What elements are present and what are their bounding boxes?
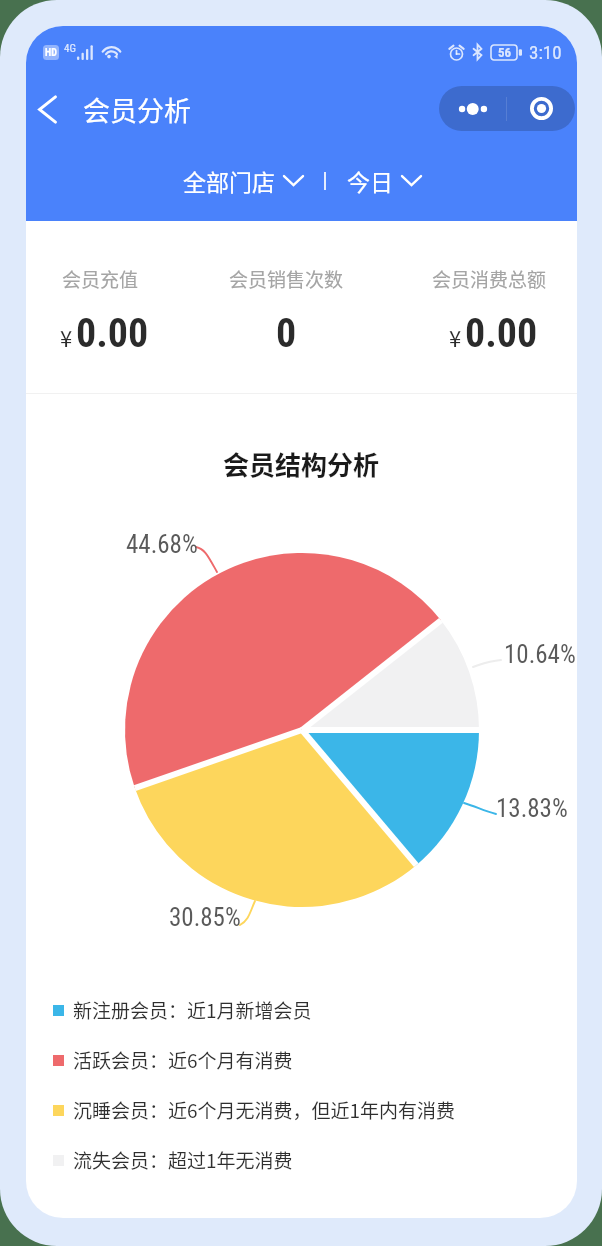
staticText: 3:10 [529, 41, 562, 63]
staticText: 会员销售次数 [229, 265, 344, 293]
staticText: 44.68% [126, 530, 198, 559]
staticText: 4G [64, 42, 76, 55]
staticText: 全部门店 [183, 164, 275, 197]
staticText: 新注册会员：近1月新增会员 [73, 996, 312, 1024]
staticText: ¥ [449, 321, 462, 353]
staticText: 0.00 [76, 310, 149, 357]
button[interactable]: 全部门店 [179, 158, 307, 203]
staticText: 会员结构分析 [223, 445, 380, 483]
staticText: 会员充值 [62, 265, 139, 293]
button[interactable]: More options [439, 86, 506, 131]
button[interactable]: 活跃会员：近6个月有消费 [26, 1035, 577, 1085]
button[interactable]: Back [26, 85, 71, 133]
staticText: 13.83% [496, 794, 568, 823]
staticText: 沉睡会员：近6个月无消费，但近1年内有消费 [73, 1096, 456, 1124]
button[interactable]: 会员充值 [26, 221, 193, 393]
staticText: 活跃会员：近6个月有消费 [73, 1046, 293, 1074]
button[interactable]: 会员消费总额 [396, 221, 577, 393]
staticText: 流失会员：超过1年无消费 [73, 1146, 293, 1174]
button[interactable]: Close mini program [507, 86, 575, 131]
button[interactable]: 今日 [343, 158, 425, 203]
staticText: 56 [498, 45, 512, 60]
staticText: 今日 [347, 164, 393, 197]
button[interactable]: 会员销售次数 [193, 221, 379, 393]
button[interactable]: 流失会员：超过1年无消费 [26, 1135, 577, 1185]
staticText: 30.85% [169, 903, 241, 932]
staticText: HD [45, 47, 57, 59]
staticText: 10.64% [504, 640, 576, 669]
staticText: 0.00 [465, 310, 538, 357]
button[interactable]: 沉睡会员：近6个月无消费，但近1年内有消费 [26, 1085, 577, 1135]
button[interactable]: 新注册会员：近1月新增会员 [26, 985, 577, 1035]
staticText: 0 [276, 310, 297, 357]
staticText: 会员消费总额 [432, 265, 547, 293]
staticText: 会员分析 [83, 90, 191, 129]
staticText: ¥ [60, 321, 73, 353]
